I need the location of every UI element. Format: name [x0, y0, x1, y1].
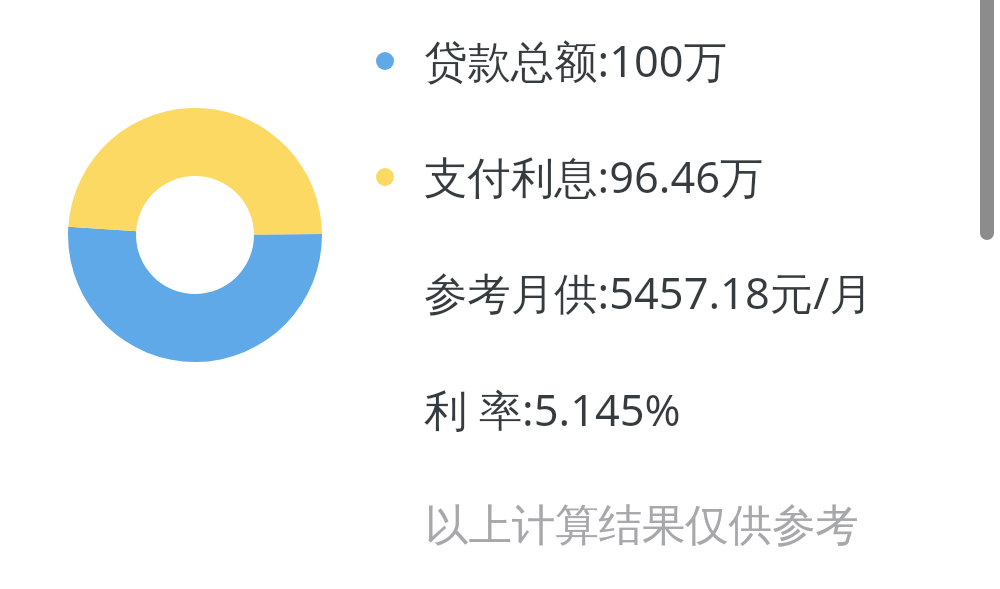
button[interactable]: 利 率:5.145%: [414, 362, 884, 440]
staticText: 利 率:5.145%: [424, 380, 681, 439]
staticText: 参考月供:5457.18元/月: [424, 263, 873, 322]
button[interactable]: 贷款构成饼图: [68, 108, 322, 362]
staticText: 以上计算结果仅供参考: [425, 498, 859, 553]
button[interactable]: 参考月供:5457.18元/月: [414, 245, 884, 323]
staticText: 支付利息:96.46万: [424, 147, 764, 206]
button[interactable]: 以上计算结果仅供参考: [415, 480, 885, 558]
button[interactable]: 贷款总额:100万: [370, 38, 800, 110]
button[interactable]: 支付利息:96.46万: [370, 154, 800, 226]
staticText: 贷款总额:100万: [424, 31, 728, 90]
